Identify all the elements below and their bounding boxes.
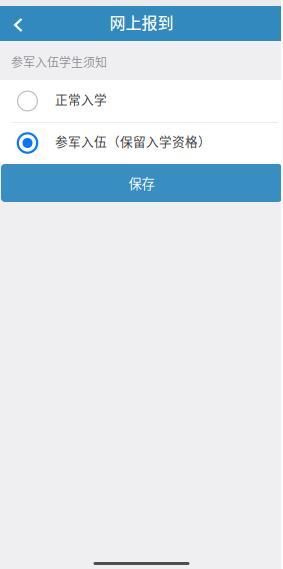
- staticText: 网上报到: [109, 10, 173, 34]
- button[interactable]: More options: [237, 6, 283, 41]
- button[interactable]: 保存: [1, 164, 282, 202]
- staticText: 正常入学: [55, 90, 107, 108]
- button[interactable]: 正常入学: [0, 80, 283, 122]
- staticText: 参军入伍学生须知: [11, 53, 107, 70]
- button[interactable]: Back: [0, 6, 46, 41]
- staticText: 保存: [128, 173, 154, 193]
- button[interactable]: 参军入伍（保留入学资格）: [0, 122, 283, 164]
- staticText: 参军入伍（保留入学资格）: [55, 132, 211, 150]
